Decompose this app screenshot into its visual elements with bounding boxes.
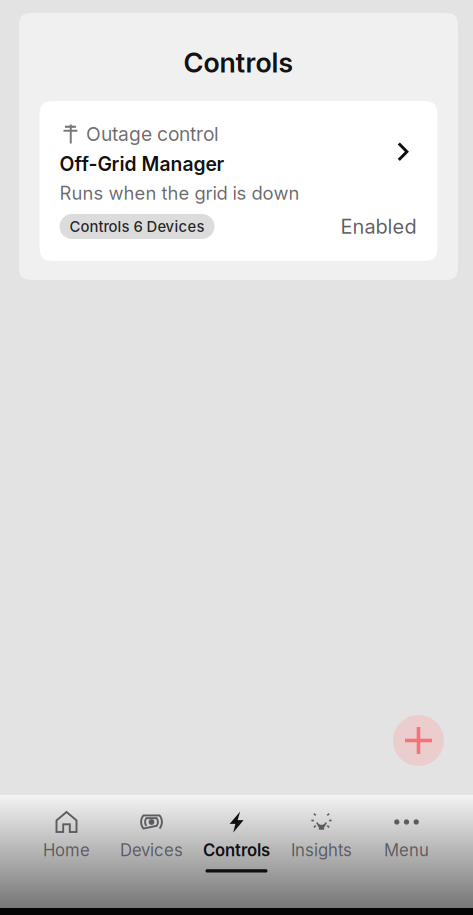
staticText: Controls 6 Devices [69, 217, 204, 235]
button[interactable]: Home [24, 795, 109, 908]
button[interactable]: Controls [194, 795, 279, 908]
button[interactable]: Devices [109, 795, 194, 908]
button[interactable]: Add [393, 715, 444, 766]
staticText: Menu [384, 840, 429, 860]
staticText: Home [43, 840, 90, 860]
staticText: Enabled [340, 214, 416, 239]
staticText: Controls [203, 840, 270, 860]
button[interactable]: Insights [279, 795, 364, 908]
staticText: Controls [183, 46, 293, 79]
button[interactable]: Menu [364, 795, 449, 908]
button[interactable]: Outage control [39, 101, 437, 261]
staticText: Devices [120, 840, 183, 860]
staticText: Runs when the grid is down [59, 182, 299, 204]
staticText: Outage control [86, 122, 219, 146]
staticText: Insights [291, 840, 352, 860]
staticText: Off-Grid Manager [59, 152, 224, 176]
